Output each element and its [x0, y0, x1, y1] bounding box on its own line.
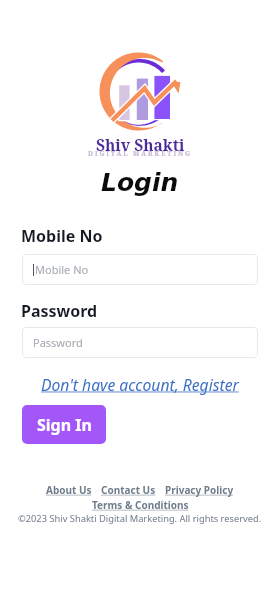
- staticText: Mobile No: [35, 262, 89, 277]
- staticText: DIGITAL MARKETING: [88, 149, 192, 158]
- button[interactable]: Contact Us: [101, 483, 156, 497]
- staticText: About Us: [46, 483, 92, 497]
- button[interactable]: Sign In: [22, 405, 106, 444]
- staticText: Shiv Shakti: [96, 134, 185, 155]
- staticText: Password: [33, 335, 83, 350]
- button[interactable]: About Us: [46, 483, 92, 497]
- staticText: Sign In: [37, 414, 92, 436]
- staticText: Login: [101, 168, 179, 197]
- staticText: ©2023 Shiv Shakti Digital Marketing. All…: [18, 512, 262, 525]
- staticText: Terms & Conditions: [92, 498, 189, 512]
- button[interactable]: Terms & Conditions: [92, 498, 189, 512]
- staticText: Password: [21, 300, 98, 322]
- staticText: Mobile No: [21, 225, 103, 247]
- staticText: Don't have account, Register: [41, 374, 239, 395]
- button[interactable]: Mobile No: [22, 254, 258, 285]
- staticText: Privacy Policy: [165, 483, 234, 497]
- button[interactable]: Password: [22, 327, 258, 358]
- button[interactable]: Don't have account, Register: [41, 374, 239, 395]
- staticText: Contact Us: [101, 483, 156, 497]
- button[interactable]: Privacy Policy: [165, 483, 234, 497]
